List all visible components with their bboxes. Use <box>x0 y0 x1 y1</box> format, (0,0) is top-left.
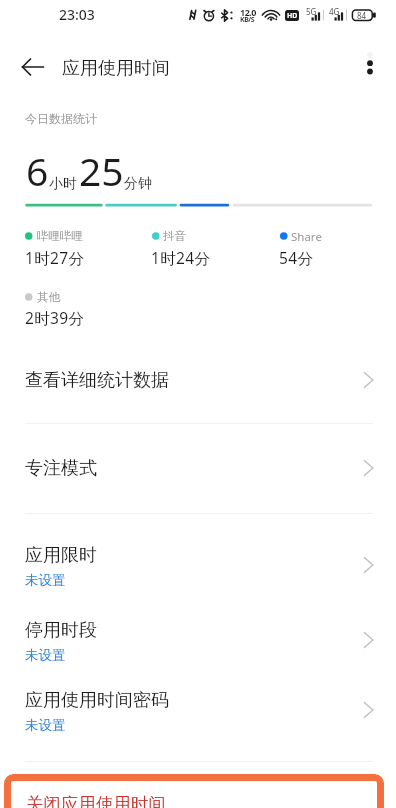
staticText: 1时24分 <box>151 247 211 268</box>
button[interactable]: 专注模式 <box>0 425 396 516</box>
button[interactable]: 应用使用时间密码 <box>0 667 396 738</box>
staticText: 其他 <box>37 290 60 304</box>
staticText: 2时39分 <box>25 307 85 328</box>
staticText: 未设置 <box>25 717 66 734</box>
staticText: 6 <box>26 144 49 197</box>
staticText: 4G <box>329 6 340 17</box>
button[interactable]: More options <box>348 45 392 89</box>
staticText: 25 <box>79 144 124 197</box>
staticText: 停用时段 <box>25 619 97 642</box>
staticText: 应用限时 <box>25 544 97 567</box>
staticText: 今日数据统计 <box>25 111 97 126</box>
staticText: 关闭应用使用时间 <box>26 793 166 808</box>
staticText: 1时27分 <box>25 247 85 268</box>
button[interactable]: 应用限时 <box>0 522 396 593</box>
button[interactable]: Back <box>11 45 55 89</box>
staticText: 12.0 <box>240 6 256 18</box>
staticText: 23:03 <box>59 5 95 24</box>
staticText: 抖音 <box>163 229 186 243</box>
staticText: 5G <box>306 6 317 17</box>
staticText: 未设置 <box>25 647 66 664</box>
staticText: HD <box>287 11 298 21</box>
button[interactable]: 查看详细统计数据 <box>0 337 396 428</box>
staticText: 小时 <box>49 175 77 193</box>
staticText: 应用使用时间密码 <box>25 689 169 712</box>
button[interactable]: 关闭应用使用时间 <box>4 774 384 808</box>
staticText: 未设置 <box>25 572 66 589</box>
staticText: 84 <box>357 10 367 21</box>
staticText: 分钟 <box>124 175 152 193</box>
staticText: 查看详细统计数据 <box>25 369 169 392</box>
button[interactable]: 应用使用时间 <box>62 57 170 80</box>
staticText: KB/S <box>240 15 255 25</box>
staticText: Share <box>291 229 322 245</box>
button[interactable]: 停用时段 <box>0 597 396 668</box>
staticText: 哔哩哔哩 <box>37 229 83 243</box>
staticText: 专注模式 <box>25 457 97 480</box>
staticText: 54分 <box>279 247 314 268</box>
